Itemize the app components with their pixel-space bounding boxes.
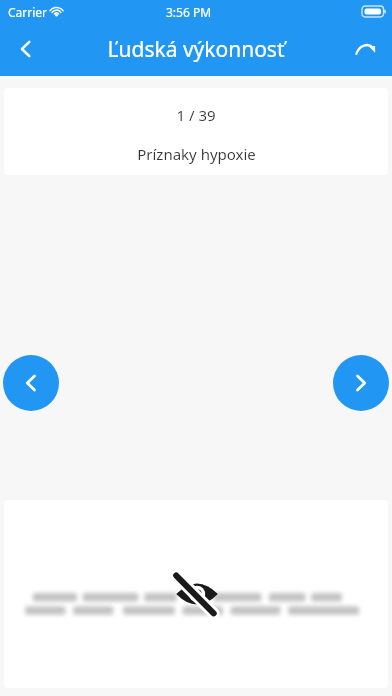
- button[interactable]: Previous: [3, 355, 59, 411]
- button[interactable]: Back: [0, 23, 52, 75]
- staticText: 1 / 39: [176, 105, 216, 125]
- button[interactable]: Next: [333, 355, 389, 411]
- staticText: Ľudská výkonnosť: [107, 35, 285, 64]
- button[interactable]: 1 / 39: [4, 88, 388, 175]
- other: Show answer: [169, 572, 223, 616]
- staticText: Príznaky hypoxie: [137, 144, 256, 164]
- button[interactable]: Show answer: [4, 500, 388, 688]
- staticText: Carrier: [8, 4, 48, 20]
- staticText: 3:56 PM: [166, 4, 212, 20]
- button[interactable]: Redo: [340, 23, 392, 75]
